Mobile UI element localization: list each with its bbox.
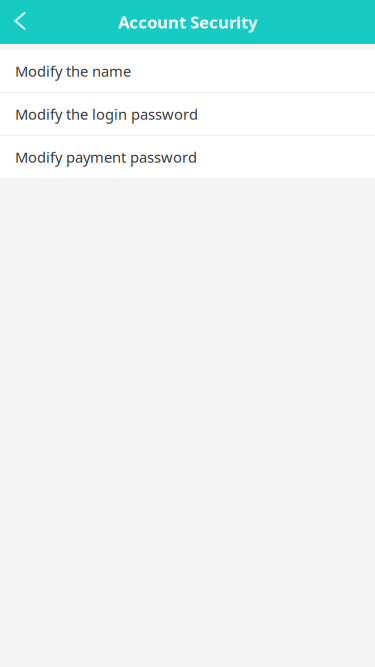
staticText: Account Security — [118, 11, 257, 33]
button[interactable]: Modify the login password — [0, 93, 375, 135]
staticText: Modify the login password — [15, 104, 198, 124]
button[interactable]: Modify the name — [0, 50, 375, 92]
button[interactable]: Back — [0, 0, 44, 44]
button[interactable]: Modify payment password — [0, 136, 375, 178]
staticText: Modify the name — [15, 61, 131, 81]
staticText: Modify payment password — [15, 147, 197, 167]
